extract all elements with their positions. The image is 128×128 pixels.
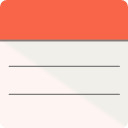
button[interactable]: Notes <box>0 0 128 128</box>
